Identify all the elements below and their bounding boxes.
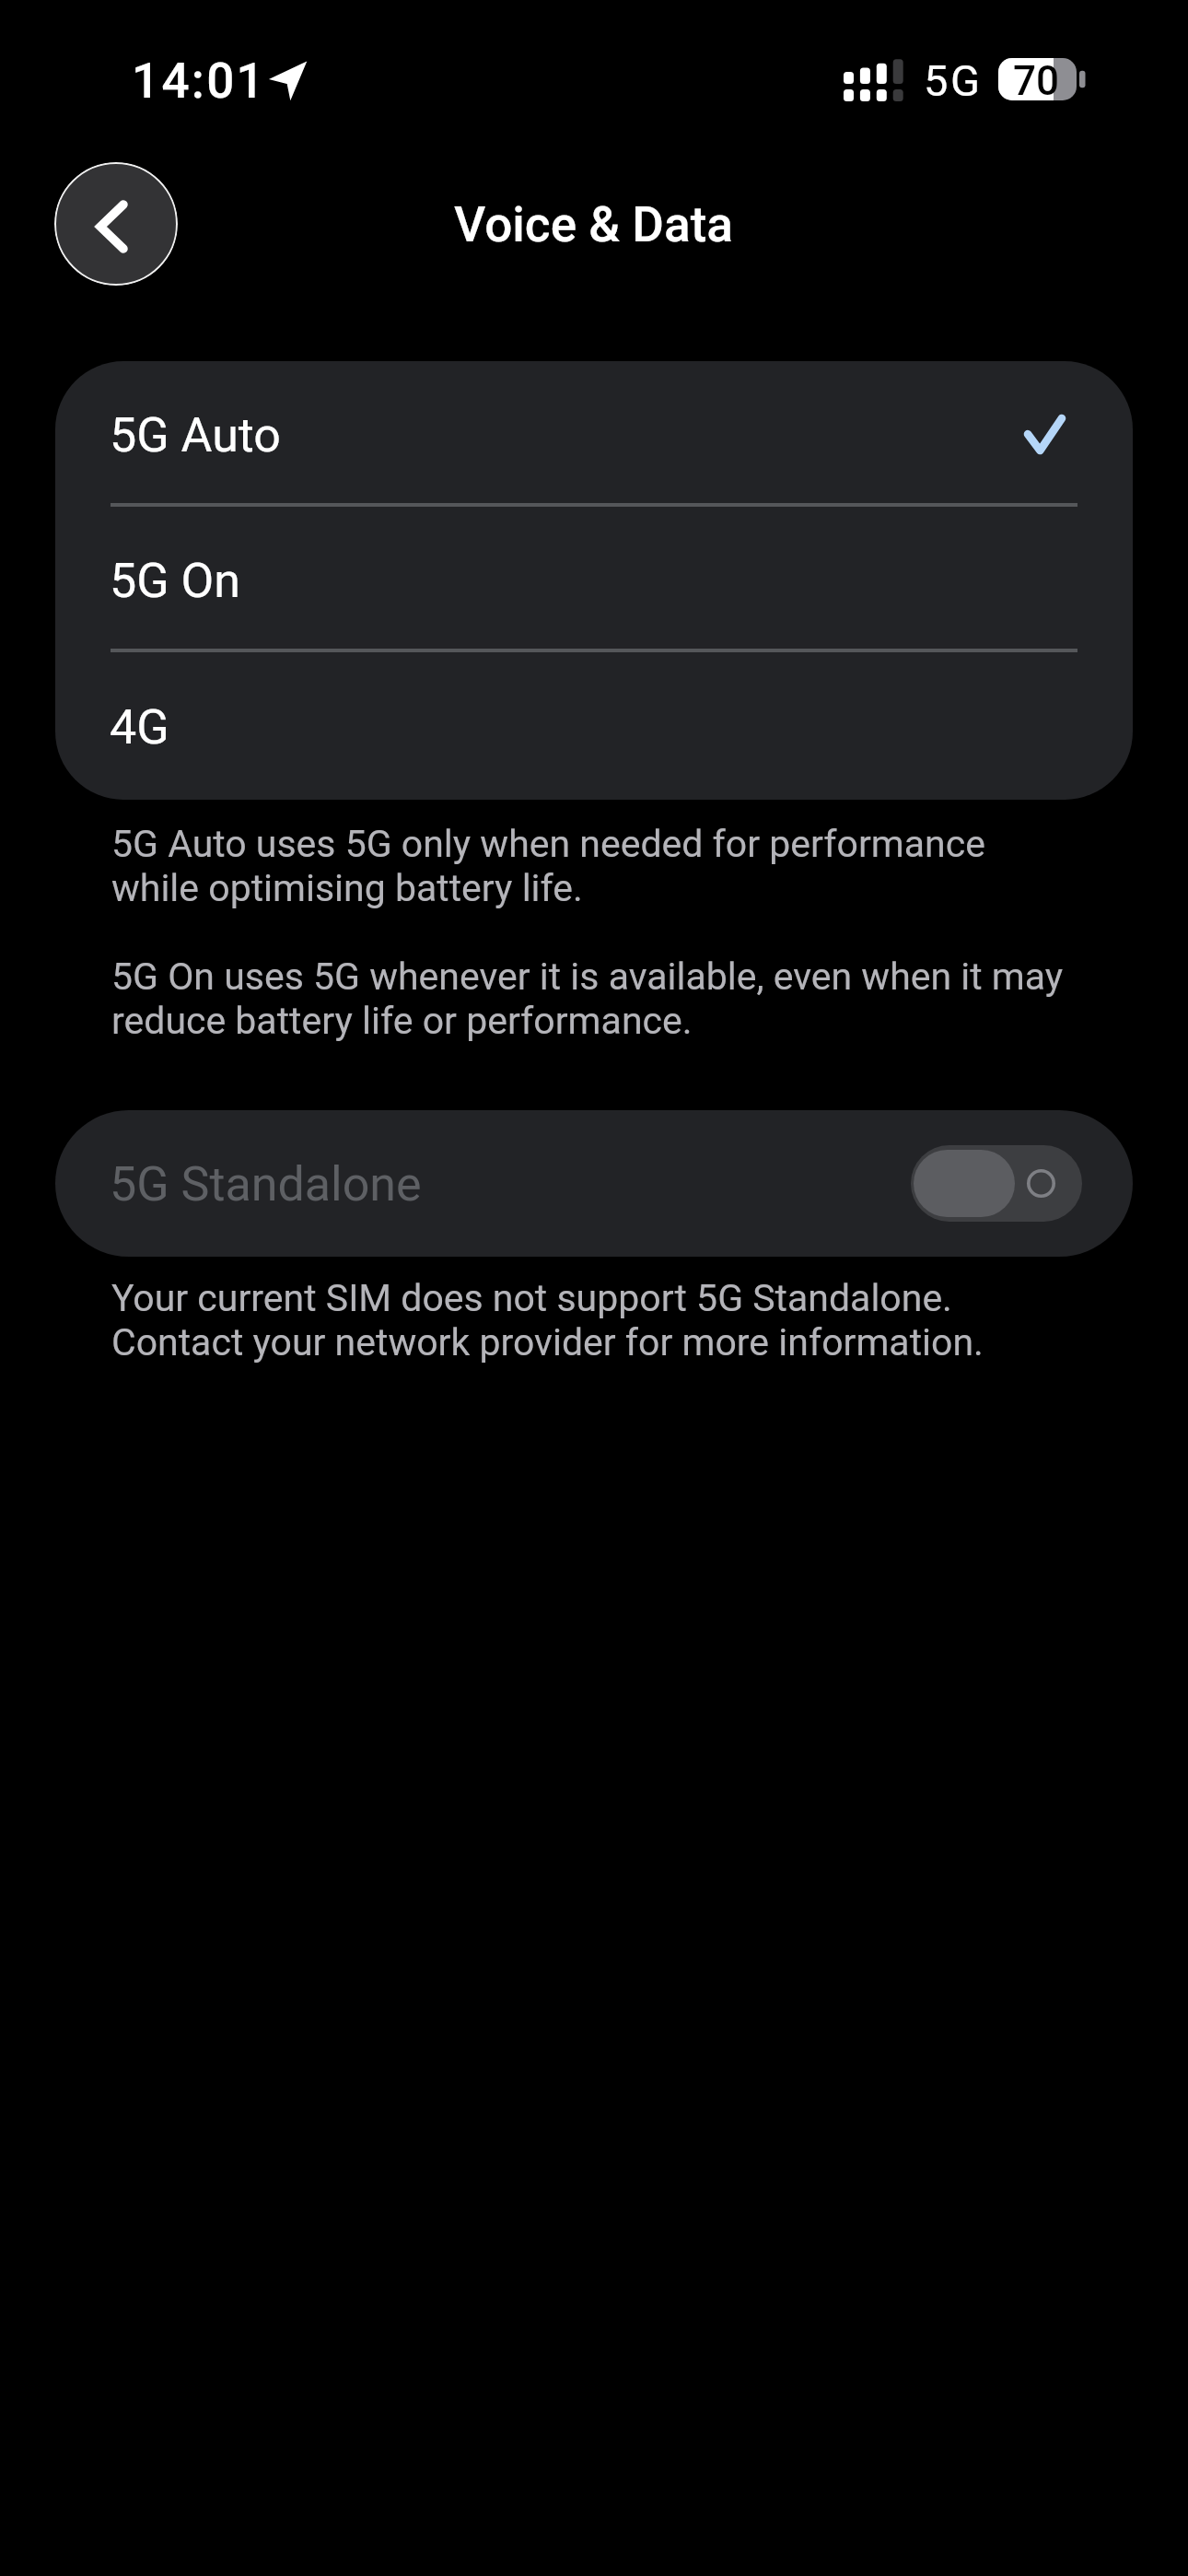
staticText: 70 — [1013, 57, 1060, 100]
button[interactable]: 5G Standalone off — [911, 1145, 1082, 1222]
staticText: 14:01 — [132, 53, 267, 110]
staticText: 5G On — [110, 553, 241, 609]
button[interactable]: 4G — [55, 652, 1133, 800]
button[interactable]: 5G On — [55, 507, 1133, 652]
staticText: Voice & Data — [454, 196, 734, 253]
staticText: 5G — [924, 55, 983, 106]
button[interactable]: 5G Auto — [55, 361, 1133, 507]
staticText: 5G On uses 5G whenever it is available, … — [111, 954, 1074, 1043]
button[interactable]: 5G Standalone — [55, 1110, 1133, 1257]
staticText: 5G Auto — [110, 407, 282, 463]
staticText: Your current SIM does not support 5G Sta… — [111, 1276, 1074, 1364]
staticText: 5G Standalone — [110, 1156, 422, 1212]
staticText: 5G Auto uses 5G only when needed for per… — [111, 822, 1074, 910]
button[interactable]: Back — [54, 162, 178, 286]
staticText: 4G — [110, 699, 169, 755]
